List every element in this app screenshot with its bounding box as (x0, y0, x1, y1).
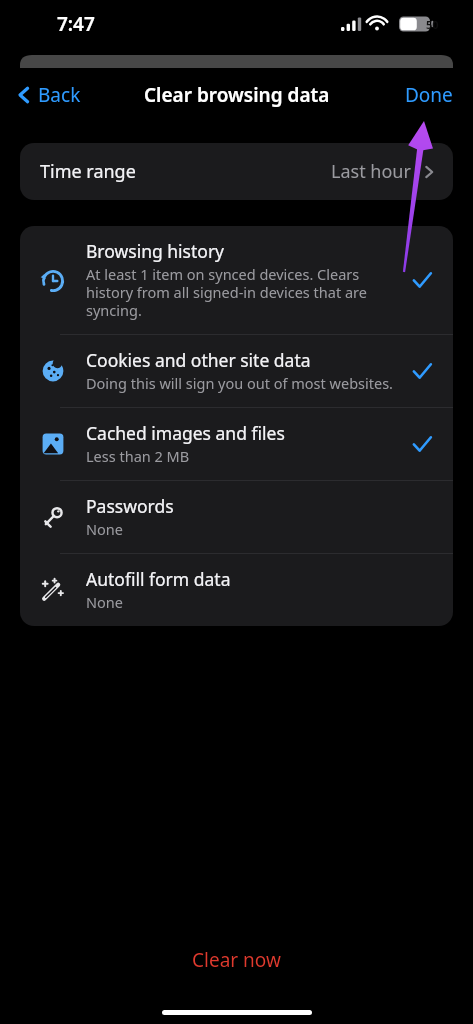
button[interactable]: Back (8, 76, 87, 114)
staticText: None (86, 519, 123, 539)
staticText: Autofill form data (86, 567, 231, 591)
button[interactable]: Passwords (20, 481, 453, 553)
staticText: Back (38, 82, 81, 108)
staticText: Last hour (331, 159, 411, 184)
staticText: Cookies and other site data (86, 348, 311, 372)
staticText: Time range (40, 159, 136, 184)
button[interactable]: Done (397, 76, 461, 114)
staticText: Browsing history (86, 239, 225, 263)
staticText: None (86, 592, 123, 612)
staticText: Done (405, 82, 453, 108)
button[interactable]: Cached images (20, 408, 453, 480)
staticText: Clear now (192, 947, 281, 973)
staticText: Cached images and files (86, 421, 285, 445)
button[interactable]: Browsing history (20, 226, 453, 334)
button[interactable]: Time range (20, 143, 453, 200)
staticText: 50 (426, 17, 439, 32)
button[interactable]: Clear now (0, 938, 473, 982)
staticText: Passwords (86, 494, 174, 518)
staticText: 7:47 (57, 11, 95, 37)
staticText: Clear browsing data (144, 82, 330, 108)
button[interactable]: Autofill form data (20, 554, 453, 626)
staticText: Doing this will sign you out of most web… (86, 373, 393, 393)
staticText: At least 1 item on synced devices. Clear… (86, 264, 397, 320)
button[interactable]: Cookies (20, 335, 453, 407)
staticText: Less than 2 MB (86, 446, 190, 466)
